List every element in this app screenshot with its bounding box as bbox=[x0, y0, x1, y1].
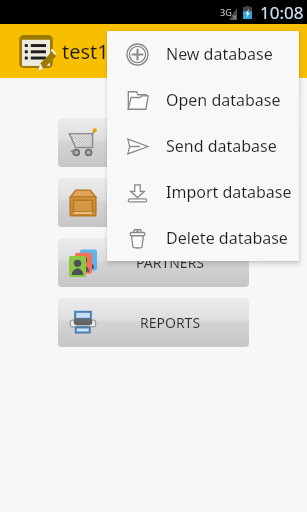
button[interactable]: Sales bbox=[58, 118, 249, 167]
button[interactable]: Delete database bbox=[107, 215, 299, 261]
button[interactable]: REPORTS bbox=[58, 298, 249, 347]
staticText: 3G bbox=[220, 6, 232, 18]
staticText: Import database bbox=[166, 181, 292, 203]
staticText: Send database bbox=[166, 135, 277, 157]
button[interactable]: test1 bbox=[0, 24, 307, 78]
staticText: test1 bbox=[62, 38, 109, 65]
staticText: New database bbox=[166, 43, 273, 65]
staticText: Open database bbox=[166, 89, 281, 111]
button[interactable]: Goods bbox=[58, 178, 249, 227]
button[interactable]: PARTNERS bbox=[58, 238, 249, 287]
button[interactable]: New database bbox=[107, 31, 299, 77]
staticText: Delete database bbox=[166, 227, 288, 249]
button[interactable]: Import database bbox=[107, 169, 299, 215]
staticText: 10:08 bbox=[260, 1, 304, 24]
button[interactable]: Open database bbox=[107, 77, 299, 123]
staticText: REPORTS bbox=[140, 313, 201, 332]
staticText: PARTNERS bbox=[136, 253, 205, 272]
button[interactable]: Send database bbox=[107, 123, 299, 169]
